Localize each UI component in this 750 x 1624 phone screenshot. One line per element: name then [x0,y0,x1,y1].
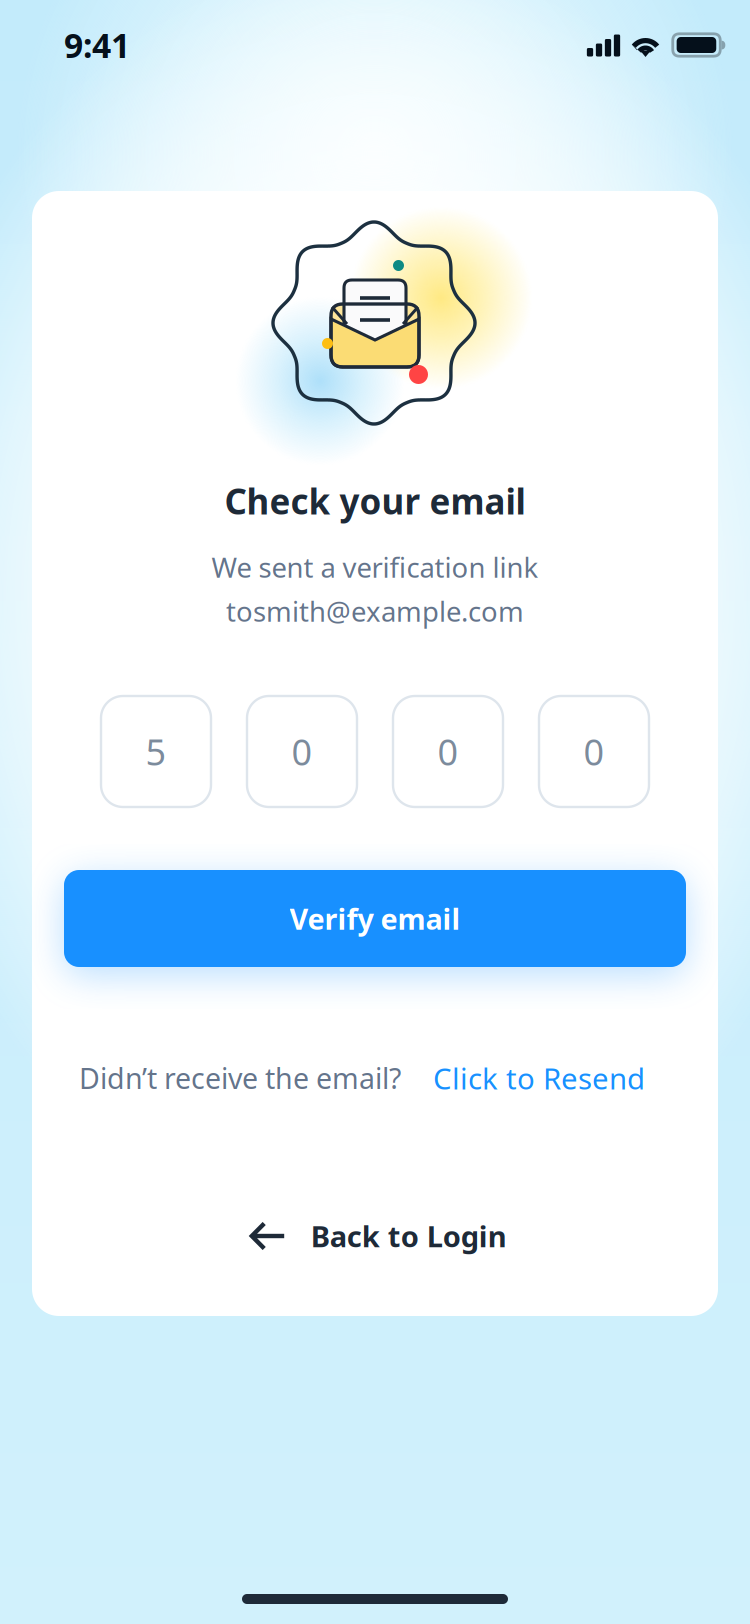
button[interactable]: Digit 0 [247,696,357,807]
staticText: Verify email [289,899,460,938]
button[interactable]: Digit 0 [393,696,503,807]
staticText: 0 [437,727,458,776]
staticText: Check your email [224,477,525,525]
button[interactable]: Back to Login [249,1216,507,1256]
staticText: Click to Resend [433,1058,645,1098]
staticText: We sent a verification link [211,548,538,586]
staticText: 0 [583,727,604,776]
staticText: 5 [145,727,166,776]
button[interactable]: Verify email [64,870,686,967]
staticText: 0 [291,727,312,776]
staticText: Didn’t receive the email? [79,1059,401,1097]
staticText: tosmith@example.com [226,592,524,630]
button[interactable]: Digit 0 [539,696,649,807]
button[interactable]: Click to Resend [433,1058,645,1098]
staticText: Back to Login [311,1216,507,1256]
staticText: 9:41 [64,22,130,68]
button[interactable]: Digit 5 [101,696,211,807]
